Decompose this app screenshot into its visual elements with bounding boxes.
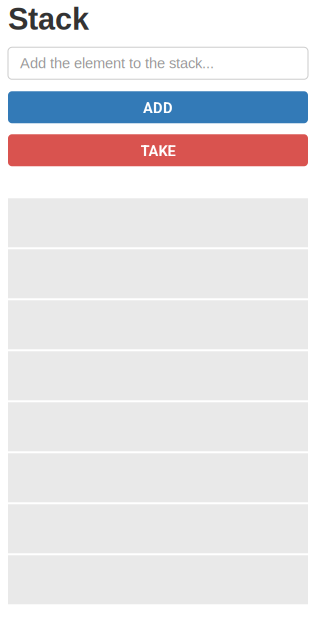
button[interactable]: Add the element to the stack...	[8, 47, 308, 79]
staticText: TAKE	[140, 143, 175, 160]
staticText: Stack	[8, 2, 89, 36]
button[interactable]: ADD	[8, 91, 308, 123]
staticText: Add the element to the stack...	[20, 55, 214, 71]
staticText: ADD	[143, 100, 173, 117]
button[interactable]: TAKE	[8, 134, 308, 166]
